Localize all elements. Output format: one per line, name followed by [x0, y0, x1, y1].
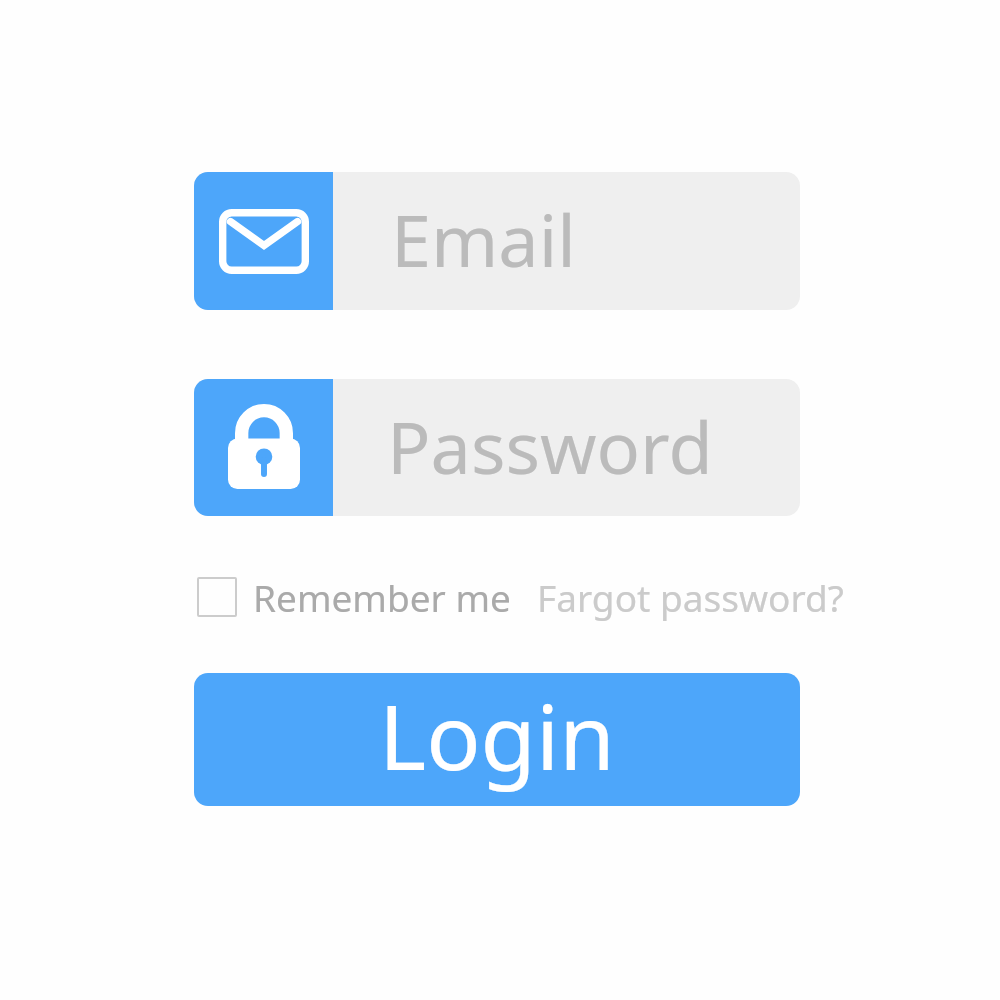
button[interactable]: Login — [194, 673, 800, 806]
other: Password — [228, 407, 300, 489]
staticText: Fargot password? — [537, 572, 844, 622]
staticText: Password — [387, 397, 713, 495]
staticText: Remember me — [253, 572, 511, 622]
staticText: Login — [379, 674, 615, 797]
button[interactable]: Email — [194, 172, 800, 310]
button[interactable]: Password — [194, 379, 800, 516]
other: Email — [219, 209, 309, 274]
button[interactable]: Fargot password? — [530, 572, 844, 622]
staticText: Email — [391, 190, 576, 288]
button[interactable]: Remember me — [193, 572, 511, 622]
